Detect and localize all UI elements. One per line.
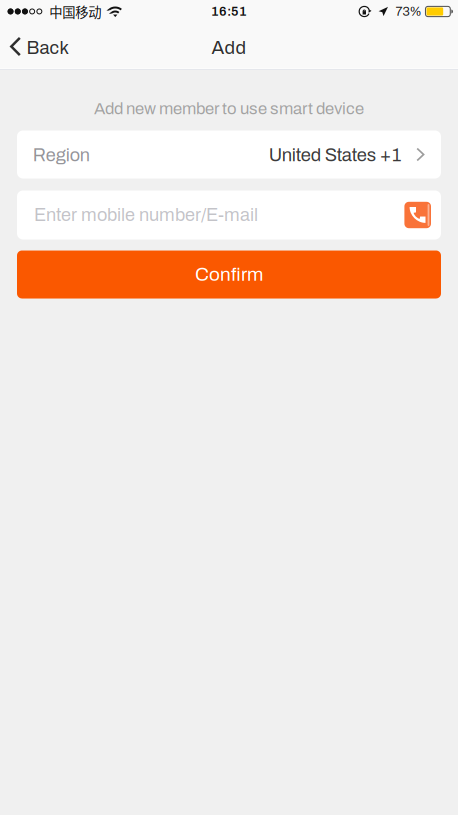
- button[interactable]: Region: [17, 130, 441, 178]
- button[interactable]: Back: [0, 23, 80, 70]
- staticText: 16:51: [211, 4, 247, 19]
- staticText: Region: [33, 145, 90, 165]
- button[interactable]: Confirm: [17, 250, 441, 298]
- staticText: Enter mobile number/E-mail: [34, 205, 258, 225]
- staticText: Confirm: [195, 264, 263, 285]
- button[interactable]: Choose from contacts: [404, 202, 431, 228]
- staticText: Back: [26, 38, 68, 58]
- staticText: 73%: [395, 4, 421, 18]
- staticText: United States +1: [269, 145, 402, 165]
- staticText: Add: [211, 37, 246, 58]
- staticText: Add new member to use smart device: [94, 99, 364, 118]
- staticText: 中国移动: [49, 2, 101, 21]
